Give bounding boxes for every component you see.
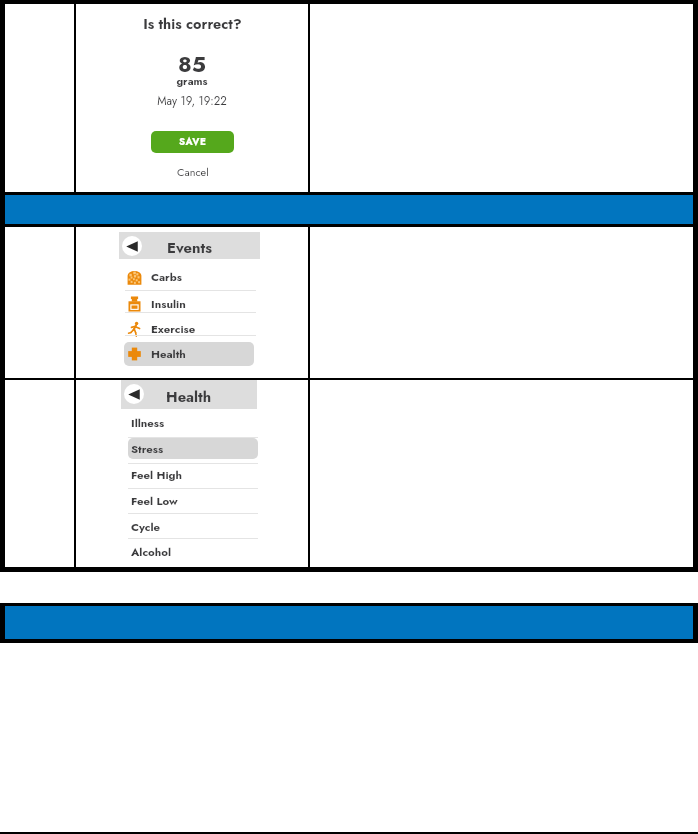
button[interactable]: Cancel [174, 164, 212, 178]
staticText: May 19, 19:22 [157, 93, 227, 110]
staticText: Health [166, 386, 212, 407]
button[interactable]: Carbs [124, 264, 255, 289]
staticText: Stress [131, 441, 164, 457]
staticText: Cycle [131, 519, 160, 535]
staticText: Cancel [177, 164, 209, 178]
button[interactable]: Feel High [128, 464, 258, 485]
button[interactable]: Health [124, 342, 254, 366]
staticText: Illness [131, 415, 165, 431]
staticText: 85 [178, 48, 206, 80]
button[interactable]: Insulin [124, 291, 255, 316]
button[interactable]: Stress [128, 438, 258, 459]
button[interactable]: Alcohol [128, 541, 258, 562]
staticText: Exercise [151, 321, 196, 337]
button[interactable]: Back [121, 380, 257, 409]
staticText: Feel High [131, 467, 183, 483]
button[interactable]: Exercise [124, 316, 255, 341]
button[interactable]: Illness [128, 412, 258, 433]
button[interactable]: SAVE [151, 131, 234, 153]
staticText: Insulin [151, 296, 186, 312]
staticText: Is this correct? [143, 14, 242, 35]
staticText: Alcohol [131, 544, 172, 560]
button[interactable]: Back [119, 232, 260, 259]
other: Back [122, 236, 142, 256]
staticText: SAVE [179, 135, 207, 149]
staticText: Feel Low [131, 493, 178, 509]
other: Back [124, 384, 144, 404]
staticText: Carbs [151, 269, 183, 285]
staticText: Health [151, 346, 186, 362]
staticText: Events [167, 237, 212, 258]
staticText: grams [176, 73, 208, 89]
button[interactable]: Feel Low [128, 490, 258, 511]
button[interactable]: Cycle [128, 516, 258, 537]
